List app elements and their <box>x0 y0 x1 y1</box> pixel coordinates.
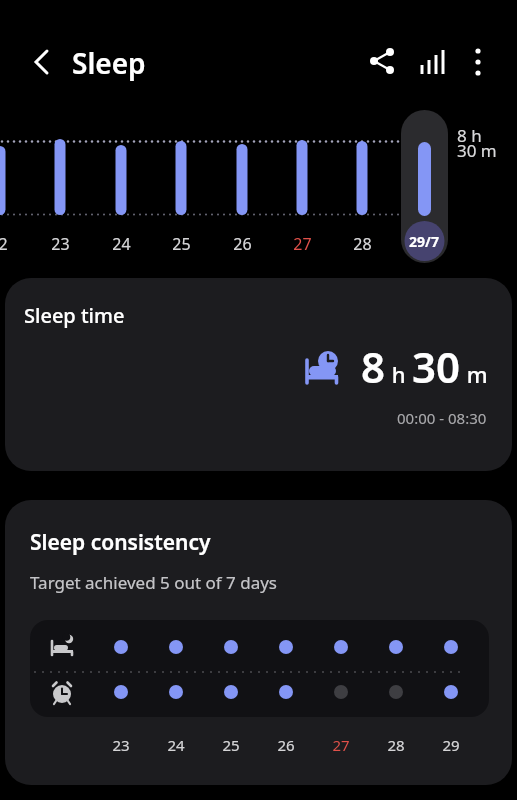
staticText: 30 m <box>457 139 497 162</box>
button[interactable] <box>25 48 57 80</box>
staticText: 8 <box>361 338 386 395</box>
button[interactable] <box>416 46 448 78</box>
button[interactable] <box>462 46 494 78</box>
staticText: 27 <box>293 233 312 255</box>
staticText: 26 <box>233 233 252 255</box>
staticText: 28 <box>387 735 405 755</box>
staticText: Sleep <box>72 44 146 82</box>
staticText: 30 <box>412 338 461 395</box>
staticText: 2 <box>0 233 8 255</box>
button[interactable]: Sleep consistency <box>5 500 512 785</box>
staticText: 29 <box>442 735 460 755</box>
staticText: m <box>461 359 488 389</box>
staticText: 24 <box>112 233 131 255</box>
staticText: 26 <box>277 735 295 755</box>
staticText: 25 <box>172 233 191 255</box>
staticText: h <box>386 359 412 389</box>
button[interactable] <box>367 46 399 78</box>
staticText: 29/7 <box>409 232 439 251</box>
staticText: Sleep time <box>24 302 125 329</box>
staticText: 25 <box>222 735 240 755</box>
staticText: 23 <box>112 735 130 755</box>
button[interactable]: Sleep time <box>5 278 512 471</box>
staticText: 23 <box>51 233 70 255</box>
staticText: Sleep consistency <box>30 528 211 557</box>
button[interactable] <box>401 110 448 263</box>
staticText: 8 h <box>457 124 482 147</box>
staticText: 24 <box>167 735 185 755</box>
staticText: 27 <box>332 735 350 755</box>
staticText: 00:00 - 08:30 <box>397 408 487 428</box>
staticText: 28 <box>353 233 372 255</box>
staticText: Target achieved 5 out of 7 days <box>30 571 278 594</box>
